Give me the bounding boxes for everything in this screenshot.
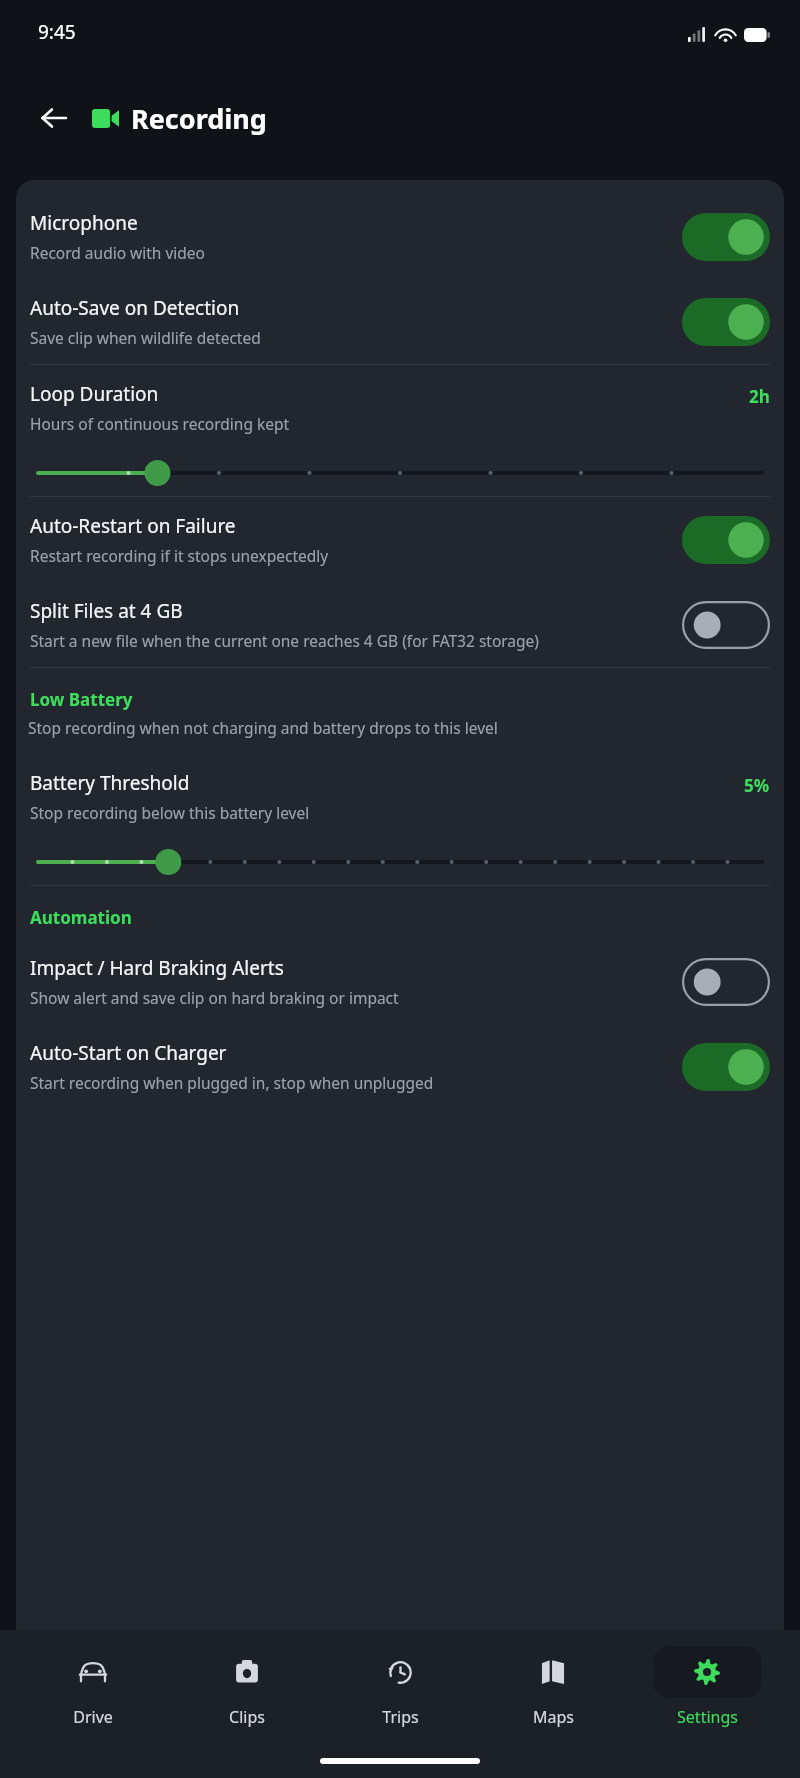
button[interactable]: On: [682, 298, 770, 346]
button[interactable]: Microphone: [28, 194, 772, 279]
button[interactable]: Settings: [647, 1646, 767, 1728]
staticText: Start a new file when the current one re…: [30, 630, 539, 651]
staticText: Low Battery: [30, 688, 133, 711]
button[interactable]: On: [682, 213, 770, 261]
staticText: Settings: [677, 1706, 738, 1728]
staticText: Stop recording when not charging and bat…: [28, 717, 735, 738]
staticText: 5%: [744, 774, 770, 797]
staticText: Auto-Restart on Failure: [30, 513, 236, 539]
staticText: Restart recording if it stops unexpected…: [30, 545, 329, 566]
staticText: 9:45: [38, 19, 76, 45]
button[interactable]: Auto-Save on Detection: [28, 279, 772, 364]
button[interactable]: Drive: [33, 1646, 153, 1728]
staticText: Drive: [73, 1706, 113, 1728]
staticText: Show alert and save clip on hard braking…: [30, 987, 399, 1008]
button[interactable]: Auto-Restart on Failure: [28, 497, 772, 582]
staticText: Trips: [382, 1706, 419, 1728]
staticText: Clips: [229, 1706, 265, 1728]
button[interactable]: [38, 456, 762, 490]
button[interactable]: Impact / Hard Braking Alerts: [28, 939, 772, 1024]
button[interactable]: Maps: [493, 1646, 613, 1728]
staticText: Record audio with video: [30, 242, 205, 263]
staticText: Recording: [131, 100, 267, 137]
button[interactable]: Clips: [187, 1646, 307, 1728]
staticText: Start recording when plugged in, stop wh…: [30, 1072, 434, 1093]
button[interactable]: Off: [682, 958, 770, 1006]
staticText: Split Files at 4 GB: [30, 598, 183, 624]
staticText: Microphone: [30, 210, 138, 236]
staticText: 2h: [749, 385, 770, 408]
staticText: Save clip when wildlife detected: [30, 327, 261, 348]
staticText: Loop Duration: [30, 381, 159, 407]
button[interactable]: On: [682, 516, 770, 564]
button[interactable]: Trips: [340, 1646, 460, 1728]
button[interactable]: [38, 845, 762, 879]
staticText: Impact / Hard Braking Alerts: [30, 955, 284, 981]
staticText: Automation: [30, 906, 132, 929]
button[interactable]: Off: [682, 601, 770, 649]
button[interactable]: Split Files at 4 GB: [28, 582, 772, 667]
button[interactable]: On: [682, 1043, 770, 1091]
staticText: Stop recording below this battery level: [30, 802, 310, 823]
button[interactable]: Back: [28, 92, 80, 144]
button[interactable]: Auto-Start on Charger: [28, 1024, 772, 1109]
staticText: Auto-Start on Charger: [30, 1040, 227, 1066]
staticText: Battery Threshold: [30, 770, 190, 796]
staticText: Hours of continuous recording kept: [30, 413, 290, 434]
staticText: Auto-Save on Detection: [30, 295, 240, 321]
staticText: Maps: [533, 1706, 574, 1728]
